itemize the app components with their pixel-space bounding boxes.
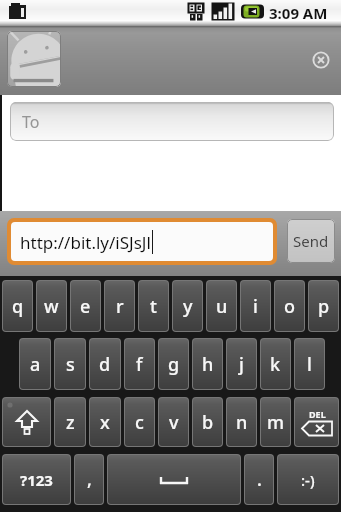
- staticText: w: [44, 294, 59, 319]
- staticText: f: [136, 352, 143, 377]
- staticText: m: [267, 410, 285, 435]
- button[interactable]: ?123: [3, 455, 70, 504]
- staticText: DEL: [309, 408, 326, 420]
- staticText: :-): [301, 470, 315, 490]
- staticText: l: [307, 352, 312, 377]
- staticText: o: [284, 294, 295, 319]
- button[interactable]: Remove recipient: [311, 50, 331, 70]
- staticText: s: [66, 352, 75, 377]
- staticText: Send: [293, 231, 329, 251]
- button[interactable]: a: [20, 339, 50, 389]
- staticText: p: [318, 294, 330, 319]
- staticText: a: [30, 352, 41, 377]
- button[interactable]: y: [173, 281, 202, 331]
- button[interactable]: d: [90, 339, 120, 389]
- staticText: ,: [87, 467, 92, 492]
- button[interactable]: Shift: [3, 398, 50, 446]
- button[interactable]: h: [193, 339, 222, 389]
- button[interactable]: http://bit.ly/iSJsJl: [11, 222, 273, 261]
- staticText: .: [257, 467, 262, 492]
- staticText: j: [239, 352, 244, 377]
- staticText: q: [12, 294, 24, 319]
- button[interactable]: z: [55, 398, 85, 446]
- staticText: b: [202, 410, 214, 435]
- staticText: e: [80, 294, 91, 319]
- button[interactable]: c: [125, 398, 154, 446]
- button[interactable]: s: [55, 339, 85, 389]
- staticText: i: [253, 294, 258, 319]
- button[interactable]: Contact photo: [0, 26, 341, 95]
- button[interactable]: u: [207, 281, 236, 331]
- button[interactable]: Delete: [295, 398, 338, 446]
- button[interactable]: b: [193, 398, 222, 446]
- button[interactable]: f: [125, 339, 154, 389]
- button[interactable]: j: [227, 339, 256, 389]
- staticText: z: [66, 410, 75, 435]
- button[interactable]: x: [90, 398, 120, 446]
- button[interactable]: Contact photo: [7, 31, 61, 87]
- button[interactable]: q: [3, 281, 32, 331]
- staticText: v: [169, 410, 179, 435]
- staticText: h: [202, 352, 214, 377]
- button[interactable]: To: [10, 102, 334, 141]
- button[interactable]: g: [159, 339, 188, 389]
- button[interactable]: w: [37, 281, 66, 331]
- staticText: g: [168, 352, 180, 377]
- button[interactable]: i: [241, 281, 270, 331]
- staticText: n: [236, 410, 248, 435]
- staticText: t: [150, 294, 157, 319]
- button[interactable]: Space: [108, 455, 240, 504]
- staticText: http://bit.ly/iSJsJl: [20, 231, 151, 254]
- staticText: ?123: [20, 470, 53, 490]
- button[interactable]: p: [309, 281, 338, 331]
- staticText: To: [22, 111, 40, 133]
- button[interactable]: k: [261, 339, 290, 389]
- staticText: d: [99, 352, 111, 377]
- button[interactable]: v: [159, 398, 188, 446]
- button[interactable]: o: [275, 281, 304, 331]
- staticText: y: [183, 294, 193, 319]
- staticText: u: [216, 294, 228, 319]
- staticText: x: [100, 410, 110, 435]
- button[interactable]: m: [261, 398, 290, 446]
- button[interactable]: .: [245, 455, 273, 504]
- staticText: k: [270, 352, 281, 377]
- staticText: 3:09 AM: [269, 3, 328, 23]
- button[interactable]: t: [139, 281, 168, 331]
- button[interactable]: l: [295, 339, 324, 389]
- button[interactable]: :-): [278, 455, 338, 504]
- button[interactable]: e: [71, 281, 100, 331]
- staticText: r: [116, 294, 124, 319]
- button[interactable]: Send: [287, 219, 335, 263]
- button[interactable]: ,: [75, 455, 103, 504]
- staticText: c: [135, 410, 144, 435]
- button[interactable]: n: [227, 398, 256, 446]
- button[interactable]: r: [105, 281, 134, 331]
